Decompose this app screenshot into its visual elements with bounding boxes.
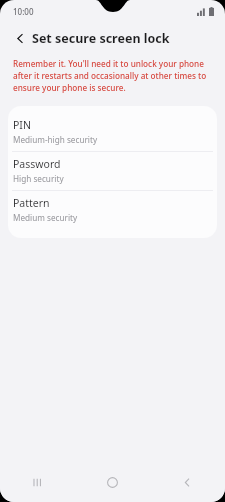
button[interactable]: PIN <box>8 113 217 151</box>
button[interactable]: Pattern <box>8 191 217 229</box>
button[interactable]: Back <box>9 27 31 49</box>
staticText: 10:00 <box>13 6 34 17</box>
button[interactable]: Back <box>150 466 225 498</box>
staticText: Remember it. You'll need it to unlock yo… <box>13 58 209 93</box>
staticText: Medium-high security <box>13 134 98 145</box>
staticText: High security <box>13 173 64 184</box>
staticText: Set secure screen lock <box>32 30 170 47</box>
staticText: Medium security <box>13 212 78 223</box>
staticText: PIN <box>13 118 31 132</box>
staticText: Pattern <box>13 196 50 210</box>
button[interactable]: Home <box>75 466 150 498</box>
button[interactable]: Password <box>8 152 217 190</box>
staticText: Password <box>13 157 61 171</box>
button[interactable]: Recent apps <box>0 466 75 498</box>
